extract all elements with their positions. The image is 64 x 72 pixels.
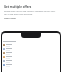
button[interactable] <box>2 55 60 59</box>
button[interactable] <box>2 59 60 63</box>
button[interactable]: Learn more <box>4 17 16 20</box>
staticText: Get multiple offers <box>4 5 61 9</box>
staticText: Dealerships across the country compete t… <box>4 10 56 16</box>
button[interactable] <box>2 43 60 47</box>
button[interactable] <box>2 47 60 51</box>
button[interactable] <box>2 51 60 55</box>
button[interactable] <box>2 63 60 67</box>
